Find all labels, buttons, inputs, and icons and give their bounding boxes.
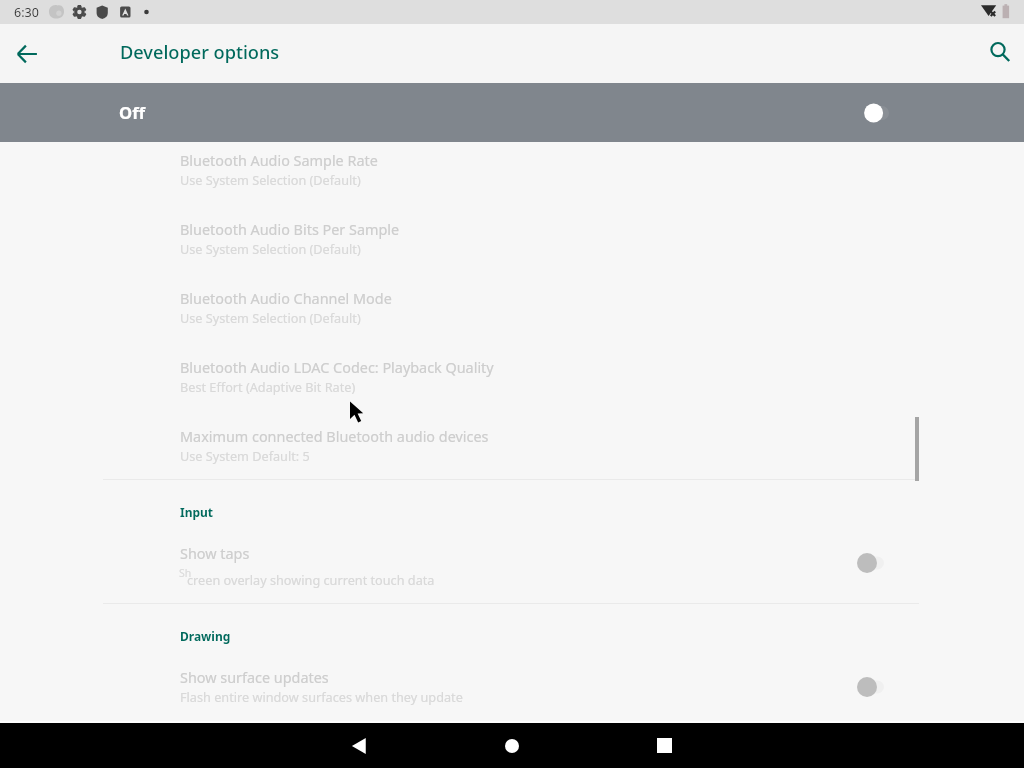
button[interactable]: Bluetooth Audio Sample Rate — [0, 143, 1024, 205]
staticText: Input — [180, 504, 214, 520]
button[interactable]: Show surface updates — [844, 667, 906, 707]
staticText: Bluetooth Audio Bits Per Sample — [180, 220, 400, 240]
button[interactable]: Use developer options — [851, 93, 913, 133]
staticText: Show surface updates — [180, 668, 329, 688]
staticText: Use System Default: 5 — [180, 447, 310, 464]
button[interactable]: Bluetooth Audio Bits Per Sample — [0, 212, 1024, 274]
staticText: Sh — [179, 566, 192, 580]
button[interactable]: Off — [0, 83, 1024, 142]
staticText: Bluetooth Audio LDAC Codec: Playback Qua… — [180, 358, 494, 378]
button[interactable]: Bluetooth Audio Channel Mode — [0, 281, 1024, 343]
button[interactable]: Show taps — [0, 536, 1024, 598]
staticText: Flash entire window surfaces when they u… — [180, 688, 463, 705]
staticText: Bluetooth Audio Sample Rate — [180, 151, 378, 171]
staticText: Bluetooth Audio Channel Mode — [180, 289, 392, 309]
button[interactable]: Maximum connected Bluetooth audio device… — [0, 419, 1024, 481]
button[interactable]: Recent apps — [588, 723, 740, 768]
button[interactable]: Home — [436, 723, 588, 768]
staticText: Off — [119, 101, 145, 124]
button[interactable]: Show surface updates — [0, 660, 1024, 722]
staticText: creen overlay showing current touch data — [187, 571, 435, 588]
button[interactable]: Bluetooth Audio LDAC Codec: Playback Qua… — [0, 350, 1024, 412]
button[interactable]: Navigate up — [7, 34, 47, 74]
button[interactable]: Back — [284, 723, 436, 768]
staticText: Developer options — [120, 40, 280, 65]
button[interactable]: Show taps — [844, 543, 906, 583]
button[interactable]: Search — [980, 32, 1020, 72]
staticText: Best Effort (Adaptive Bit Rate) — [180, 378, 356, 395]
staticText: 6:30 — [14, 4, 39, 21]
staticText: Drawing — [180, 628, 231, 644]
staticText: Use System Selection (Default) — [180, 240, 361, 257]
staticText: Show taps — [180, 544, 250, 564]
staticText: Use System Selection (Default) — [180, 309, 361, 326]
staticText: Maximum connected Bluetooth audio device… — [180, 427, 489, 447]
staticText: Use System Selection (Default) — [180, 171, 361, 188]
